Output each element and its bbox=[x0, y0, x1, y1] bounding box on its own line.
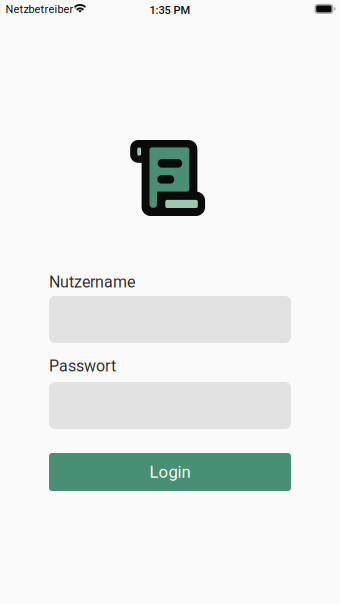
staticText: 1:35 PM bbox=[149, 4, 190, 17]
button[interactable]: Login bbox=[49, 453, 291, 491]
staticText: Login bbox=[149, 462, 190, 482]
staticText: Passwort bbox=[49, 357, 116, 375]
staticText: Nutzername bbox=[49, 273, 135, 291]
staticText: Netzbetreiber bbox=[6, 3, 74, 16]
